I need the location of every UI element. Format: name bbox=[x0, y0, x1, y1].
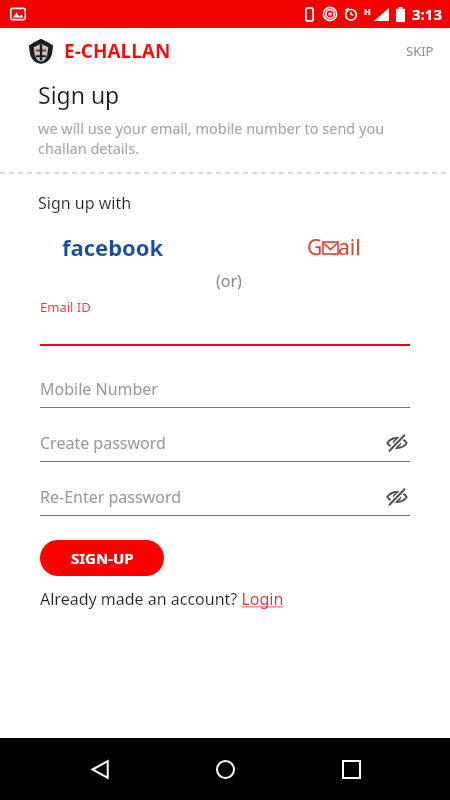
staticText: Sign up bbox=[38, 79, 120, 110]
button[interactable]: Recent apps bbox=[325, 743, 377, 795]
staticText: H bbox=[364, 5, 371, 17]
button[interactable]: Sign up with Facebook bbox=[62, 232, 164, 262]
staticText: (or) bbox=[216, 270, 242, 292]
button[interactable]: Create password bbox=[40, 430, 410, 462]
button[interactable]: Mobile Number bbox=[40, 376, 410, 408]
staticText: G bbox=[307, 233, 323, 262]
staticText: Sign up with bbox=[38, 192, 132, 214]
button[interactable]: Toggle password visibility bbox=[384, 484, 410, 510]
staticText: ail bbox=[338, 233, 361, 262]
button[interactable]: Toggle password visibility bbox=[384, 430, 410, 456]
staticText: we will use your email, mobile number to… bbox=[38, 118, 420, 159]
staticText: Email ID bbox=[40, 298, 91, 316]
button[interactable]: SIGN-UP bbox=[40, 540, 164, 576]
staticText: Already made an account? Login bbox=[40, 588, 284, 610]
button[interactable]: Already made an account? Login bbox=[40, 588, 284, 610]
staticText: Create password bbox=[40, 432, 166, 454]
button[interactable]: Re-Enter password bbox=[40, 484, 410, 516]
staticText: Mobile Number bbox=[40, 378, 158, 400]
button[interactable]: Home bbox=[199, 743, 251, 795]
button[interactable]: E-CHALLAN bbox=[28, 38, 171, 64]
staticText: facebook bbox=[62, 232, 164, 262]
button[interactable]: Sign up with Gmail bbox=[307, 233, 361, 262]
staticText: 3:13 bbox=[412, 4, 442, 24]
staticText: SKIP bbox=[406, 42, 434, 60]
staticText: E-CHALLAN bbox=[64, 38, 171, 64]
button[interactable]: Back bbox=[74, 743, 126, 795]
button[interactable]: SKIP bbox=[390, 34, 450, 68]
staticText: SIGN-UP bbox=[71, 548, 134, 568]
staticText: Re-Enter password bbox=[40, 486, 182, 508]
